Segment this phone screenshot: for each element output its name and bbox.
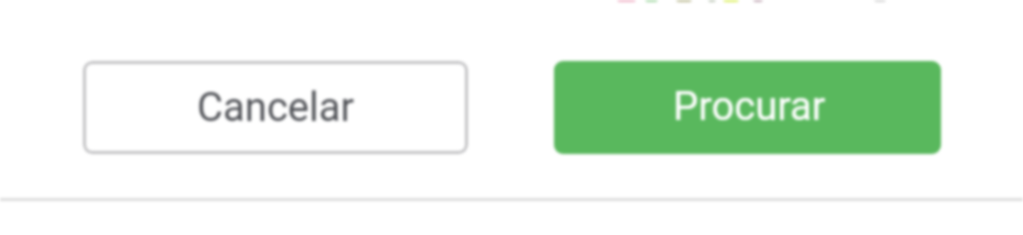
button[interactable]: Cancelar	[83, 61, 468, 154]
button[interactable]: Procurar	[554, 61, 941, 154]
staticText: Procurar	[673, 83, 826, 130]
staticText: Cancelar	[197, 84, 355, 131]
